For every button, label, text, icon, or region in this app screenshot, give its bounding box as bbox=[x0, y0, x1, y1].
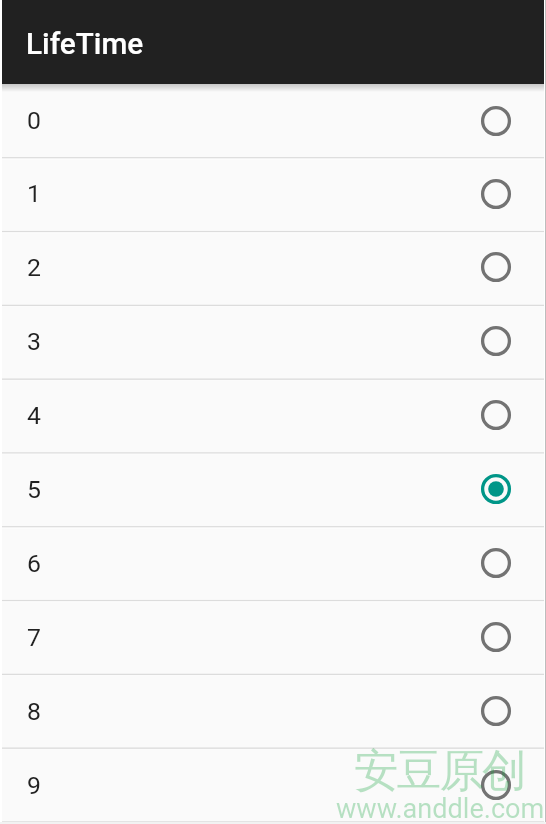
staticText: 安豆原创 bbox=[354, 743, 525, 800]
staticText: 0 bbox=[27, 106, 446, 135]
button[interactable]: 8 bbox=[0, 674, 546, 748]
staticText: 8 bbox=[27, 697, 446, 726]
staticText: www.anddle.com bbox=[336, 793, 545, 824]
button[interactable]: Select option 8 bbox=[446, 674, 546, 748]
button[interactable]: 3 bbox=[0, 304, 546, 378]
button[interactable]: 6 bbox=[0, 526, 546, 600]
button[interactable]: 4 bbox=[0, 378, 546, 452]
button[interactable]: Select option 4 bbox=[446, 378, 546, 452]
button[interactable]: 2 bbox=[0, 230, 546, 304]
staticText: 1 bbox=[27, 179, 446, 208]
button[interactable]: Select option 7 bbox=[446, 600, 546, 674]
button[interactable]: 7 bbox=[0, 600, 546, 674]
staticText: 2 bbox=[27, 253, 446, 282]
button[interactable]: 0 bbox=[0, 84, 546, 157]
staticText: 9 bbox=[27, 771, 446, 800]
button[interactable]: Select option 9 bbox=[446, 748, 546, 822]
staticText: 7 bbox=[27, 623, 446, 652]
staticText: 3 bbox=[27, 327, 446, 356]
staticText: 6 bbox=[27, 549, 446, 578]
button[interactable]: Select option 1 bbox=[446, 157, 546, 230]
staticText: 4 bbox=[27, 401, 446, 430]
staticText: 5 bbox=[27, 475, 446, 504]
button[interactable]: Select option 6 bbox=[446, 526, 546, 600]
button[interactable]: 5 bbox=[0, 452, 546, 526]
button[interactable]: 1 bbox=[0, 157, 546, 230]
button[interactable]: 9 bbox=[0, 748, 546, 822]
button[interactable]: Select option 0 bbox=[446, 84, 546, 157]
button[interactable]: Select option 3 bbox=[446, 304, 546, 378]
button[interactable]: Selected, option 5 bbox=[446, 452, 546, 526]
button[interactable]: Select option 2 bbox=[446, 230, 546, 304]
staticText: LifeTime bbox=[26, 26, 144, 61]
